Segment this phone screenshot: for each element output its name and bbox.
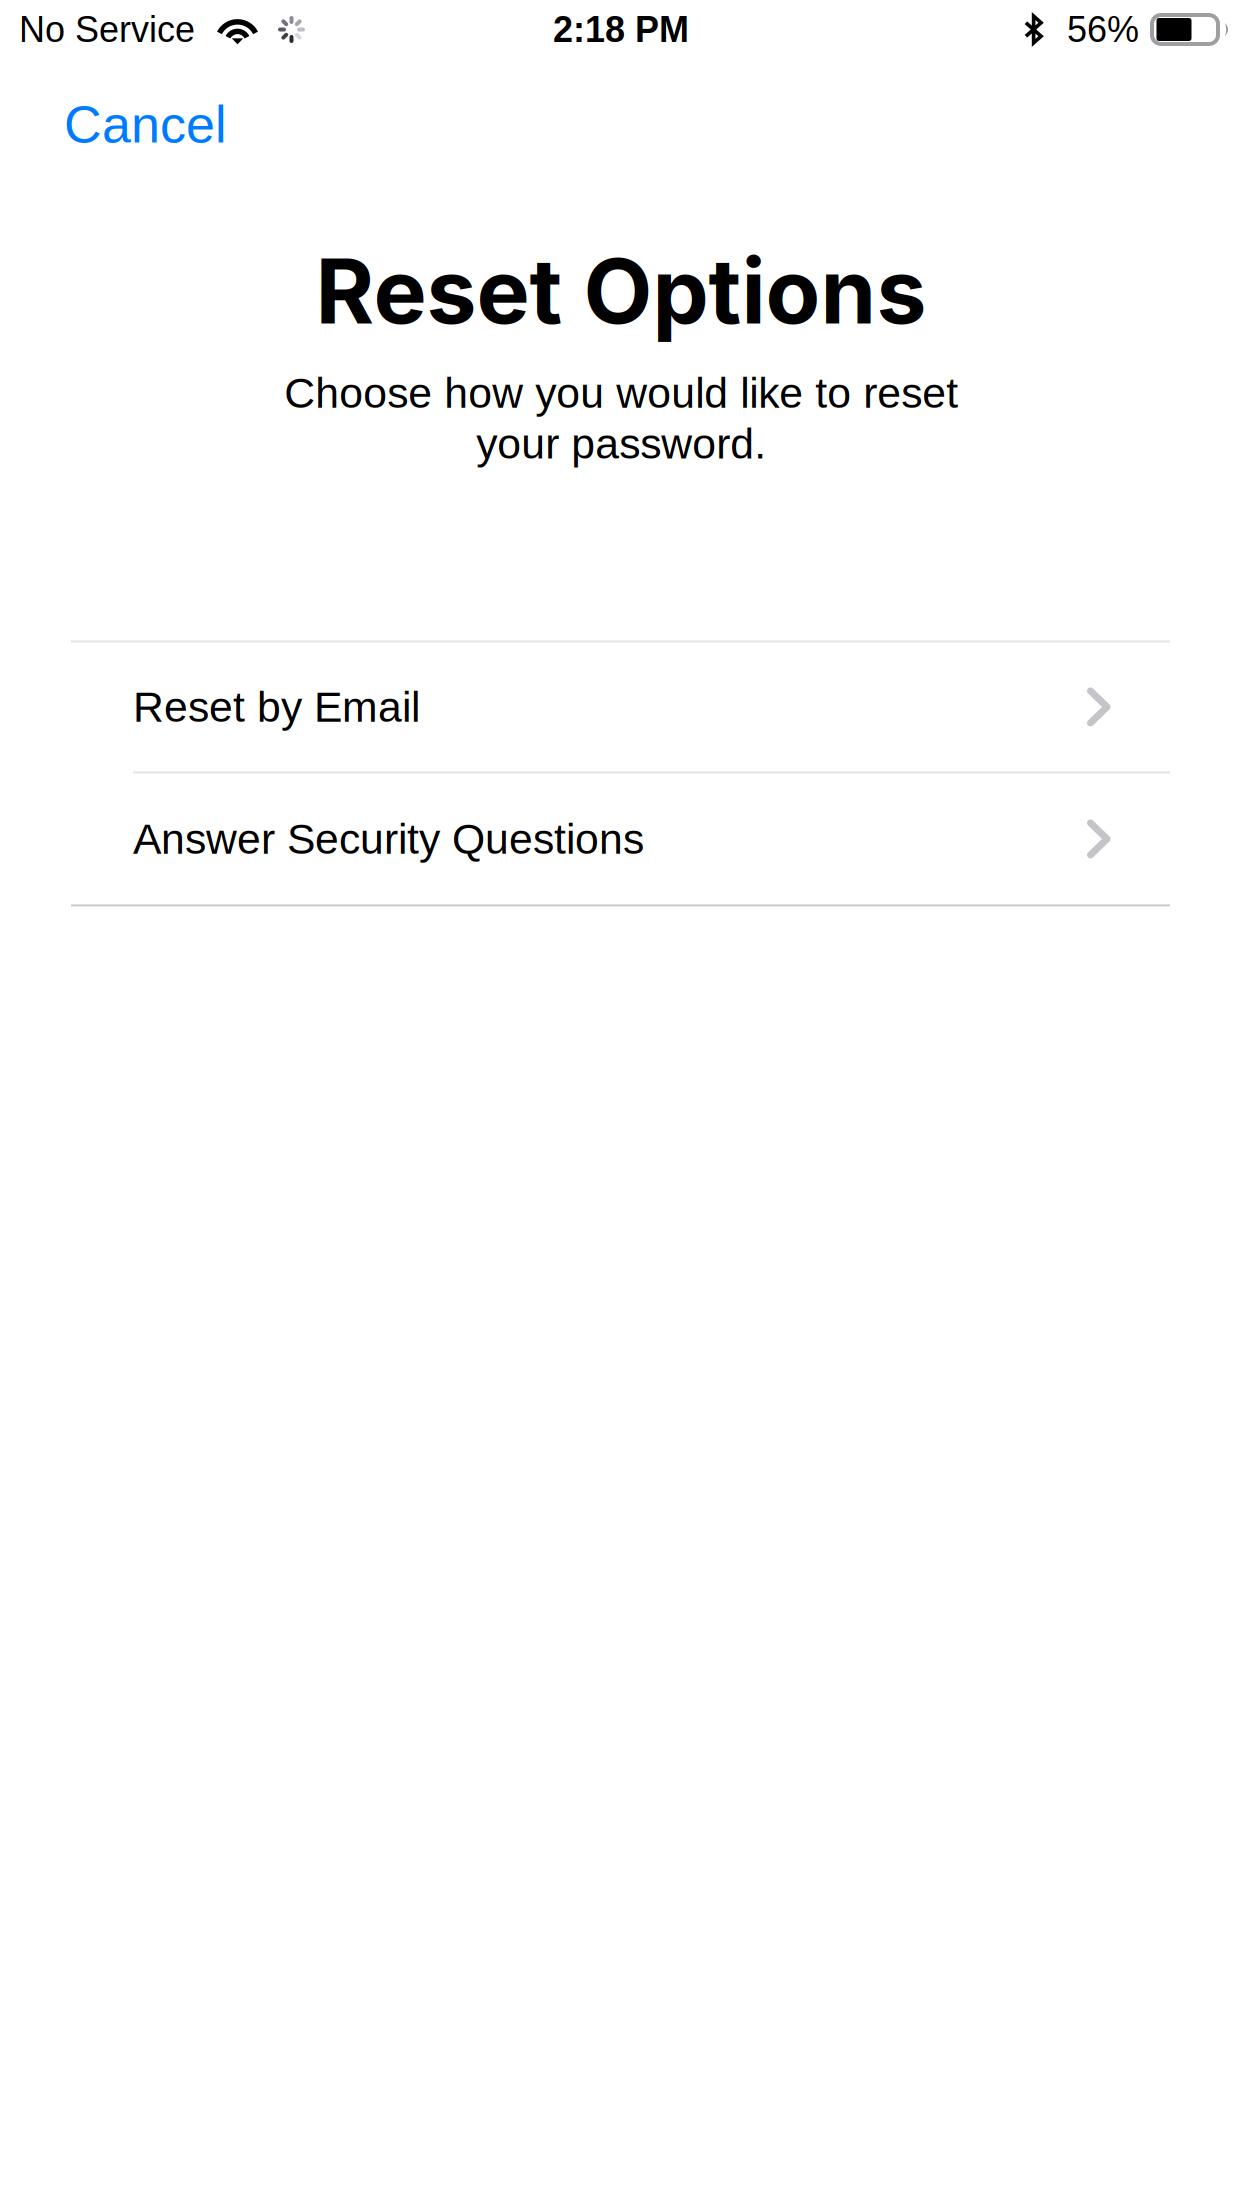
staticText: 2:18 PM [553, 9, 689, 50]
staticText: Reset Options [315, 237, 926, 345]
staticText: No Service [19, 9, 195, 50]
staticText: Cancel [64, 95, 227, 154]
staticText: Reset by Email [133, 683, 420, 731]
staticText: 56% [1067, 9, 1139, 50]
button[interactable]: Cancel [42, 78, 249, 171]
button[interactable]: Reset by Email [71, 642, 1170, 771]
staticText: Answer Security Questions [133, 815, 644, 863]
button[interactable]: Answer Security Questions [71, 773, 1170, 904]
staticText: Choose how you would like to reset your … [284, 369, 958, 467]
